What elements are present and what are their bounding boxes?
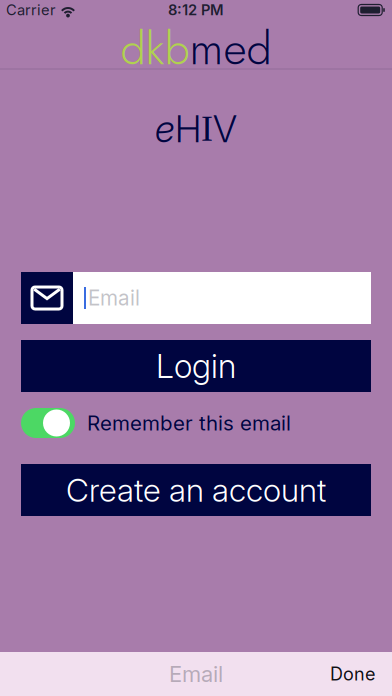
button[interactable]: Done (317, 653, 388, 695)
staticText: I (201, 109, 213, 149)
staticText: H (175, 106, 201, 151)
staticText: e (155, 106, 175, 151)
staticText: Carrier (6, 1, 56, 19)
staticText: Remember this email (87, 411, 291, 435)
staticText: Done (330, 663, 375, 685)
staticText: Create an account (66, 471, 326, 509)
staticText: Login (156, 346, 236, 386)
button[interactable]: Email (21, 272, 371, 324)
staticText: 8:12 PM (168, 1, 224, 19)
button[interactable]: Create an account (21, 464, 371, 516)
staticText: Email (88, 285, 140, 310)
staticText: V (213, 106, 237, 151)
staticText: dkb (120, 16, 189, 81)
staticText: med (189, 16, 271, 81)
staticText: Email (169, 661, 223, 687)
button[interactable]: Remember this email (21, 408, 371, 438)
button[interactable]: Login (21, 340, 371, 392)
